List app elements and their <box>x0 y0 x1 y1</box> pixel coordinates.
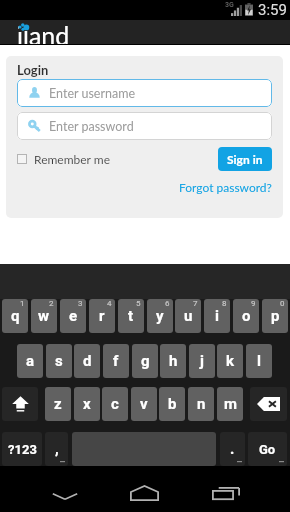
staticText: 3:59 <box>258 1 287 19</box>
staticText: 0 <box>280 299 285 308</box>
staticText: 8 <box>222 299 227 308</box>
staticText: v <box>140 395 148 413</box>
staticText: k <box>226 352 235 370</box>
staticText: Sign in <box>227 152 263 166</box>
button[interactable]: p <box>262 299 288 333</box>
staticText: g <box>141 352 150 370</box>
button[interactable]: c <box>102 387 128 421</box>
staticText: c <box>111 395 119 413</box>
staticText: z <box>54 395 62 413</box>
staticText: 4 <box>107 299 112 308</box>
button[interactable]: Backspace <box>250 387 287 421</box>
staticText: y <box>156 307 164 325</box>
staticText: Forgot password? <box>179 180 272 194</box>
staticText: b <box>168 395 177 413</box>
staticText: 5 <box>136 299 141 308</box>
button[interactable]: l <box>246 344 272 378</box>
staticText: 3 <box>78 299 83 308</box>
staticText: r <box>99 307 105 325</box>
staticText: iland <box>17 20 70 44</box>
button[interactable]: t <box>118 299 144 333</box>
staticText: u <box>184 307 193 325</box>
button[interactable]: s <box>46 344 72 378</box>
staticText: o <box>242 307 251 325</box>
button[interactable]: g <box>132 344 158 378</box>
button[interactable]: Shift <box>2 387 38 421</box>
staticText: 6 <box>165 299 170 308</box>
button[interactable]: e <box>60 299 86 333</box>
button[interactable]: k <box>217 344 243 378</box>
button[interactable]: v <box>131 387 157 421</box>
staticText: ?123 <box>8 442 37 457</box>
button[interactable]: Home <box>121 480 167 500</box>
button[interactable]: ?123 <box>2 432 42 466</box>
button[interactable]: w <box>31 299 57 333</box>
staticText: i <box>215 307 219 325</box>
staticText: n <box>197 395 206 413</box>
staticText: m <box>224 395 237 413</box>
button[interactable]: Enter password <box>17 112 272 140</box>
staticText: j <box>200 352 204 370</box>
button[interactable]: i <box>204 299 230 333</box>
button[interactable]: a <box>17 344 43 378</box>
staticText: Enter password <box>49 119 134 134</box>
staticText: h <box>169 352 178 370</box>
button[interactable]: j <box>189 344 215 378</box>
button[interactable]: . <box>220 432 245 466</box>
staticText: , <box>55 440 59 458</box>
staticText: s <box>55 352 63 370</box>
staticText: Go <box>259 442 276 457</box>
button[interactable]: Back <box>42 482 88 502</box>
staticText: x <box>83 395 91 413</box>
button[interactable]: z <box>45 387 71 421</box>
button[interactable]: q <box>2 299 28 333</box>
button[interactable]: y <box>147 299 173 333</box>
button[interactable]: n <box>188 387 214 421</box>
button[interactable]: Go <box>248 432 287 466</box>
staticText: Remember me <box>34 152 110 166</box>
button[interactable]: u <box>175 299 201 333</box>
button[interactable]: Forgot password? <box>179 180 272 194</box>
button[interactable]: d <box>74 344 100 378</box>
button[interactable]: b <box>159 387 185 421</box>
staticText: t <box>128 307 134 325</box>
staticText: q <box>11 307 20 325</box>
button[interactable]: h <box>160 344 186 378</box>
staticText: 9 <box>251 299 256 308</box>
button[interactable]: r <box>89 299 115 333</box>
staticText: p <box>271 307 280 325</box>
staticText: 3G <box>225 1 234 9</box>
staticText: d <box>83 352 92 370</box>
staticText: . <box>230 440 235 458</box>
staticText: Login <box>17 62 49 78</box>
button[interactable]: m <box>217 387 243 421</box>
staticText: 1 <box>20 299 25 308</box>
staticText: 2 <box>49 299 54 308</box>
staticText: w <box>38 307 50 325</box>
button[interactable]: Sign in <box>218 147 272 171</box>
staticText: l <box>257 352 261 370</box>
staticText: Enter username <box>49 86 136 101</box>
button[interactable]: x <box>74 387 100 421</box>
button[interactable]: , <box>45 432 68 466</box>
button[interactable]: Recents <box>203 480 249 500</box>
staticText: e <box>69 307 78 325</box>
button[interactable]: o <box>233 299 259 333</box>
button[interactable]: Enter username <box>17 79 272 107</box>
button[interactable]: f <box>103 344 129 378</box>
staticText: a <box>26 352 35 370</box>
button[interactable]: Remember me <box>17 152 110 166</box>
staticText: f <box>113 352 119 370</box>
staticText: 7 <box>193 299 198 308</box>
